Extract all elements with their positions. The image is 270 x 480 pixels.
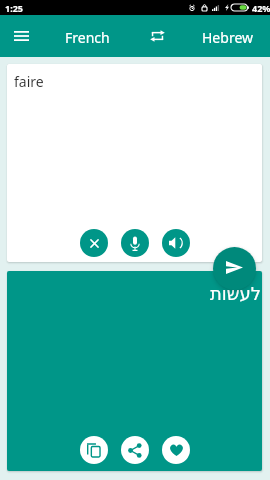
button[interactable]: Copy <box>80 436 108 464</box>
staticText: 1:25 <box>5 2 23 14</box>
button[interactable]: Swap languages <box>146 25 168 47</box>
button[interactable]: Voice input <box>121 229 149 257</box>
staticText: 42% <box>252 2 270 14</box>
button[interactable]: Share <box>121 436 149 464</box>
staticText: French <box>65 28 110 47</box>
button[interactable]: Listen <box>162 229 190 257</box>
button[interactable]: Clear <box>80 229 108 257</box>
button[interactable]: Favorite <box>162 436 190 464</box>
button[interactable]: Translate <box>213 247 256 290</box>
staticText: Hebrew <box>202 28 254 47</box>
staticText: faire <box>14 72 44 91</box>
button[interactable]: Menu <box>7 22 35 50</box>
staticText: לעשות <box>210 283 261 304</box>
